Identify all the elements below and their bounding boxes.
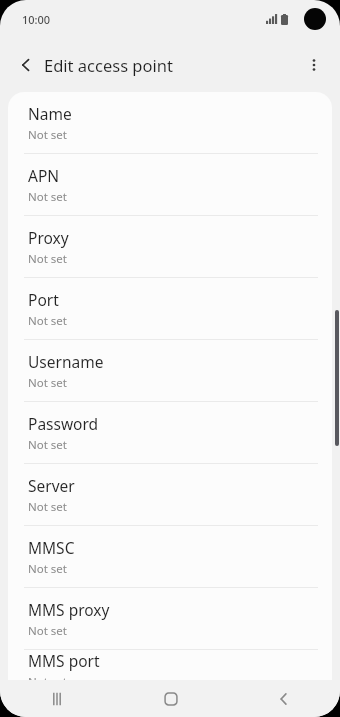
staticText: Not set [28,561,67,577]
button[interactable]: Proxy [8,216,332,277]
staticText: Port [28,289,59,310]
staticText: Not set [28,623,67,639]
button[interactable]: Password [8,402,332,463]
button[interactable]: Back [8,47,44,83]
button[interactable]: Home [114,680,227,717]
staticText: Not set [28,189,67,205]
button[interactable]: Recents [0,680,114,717]
staticText: Password [28,413,99,434]
staticText: Not set [28,437,67,453]
staticText: Not set [28,499,67,515]
button[interactable]: More options [296,47,332,83]
staticText: Edit access point [44,54,173,76]
staticText: 10:00 [22,12,51,27]
staticText: Not set [28,313,67,329]
staticText: Name [28,103,72,124]
button[interactable]: APN [8,154,332,215]
staticText: Username [28,351,104,372]
button[interactable]: Port [8,278,332,339]
staticText: Proxy [28,227,69,248]
button[interactable]: Username [8,340,332,401]
staticText: MMS proxy [28,599,110,620]
button[interactable]: MMS port [8,650,332,680]
button[interactable]: MMS proxy [8,588,332,649]
button[interactable]: Server [8,464,332,525]
staticText: MMSC [28,537,75,558]
staticText: MMS port [28,650,100,671]
staticText: Not set [28,251,67,267]
staticText: Server [28,475,75,496]
button[interactable]: MMSC [8,526,332,587]
staticText: Not set [28,375,67,391]
button[interactable]: Back [227,680,340,717]
button[interactable]: Name [8,92,332,153]
staticText: Not set [28,674,67,680]
staticText: Not set [28,127,67,143]
staticText: APN [28,165,60,186]
